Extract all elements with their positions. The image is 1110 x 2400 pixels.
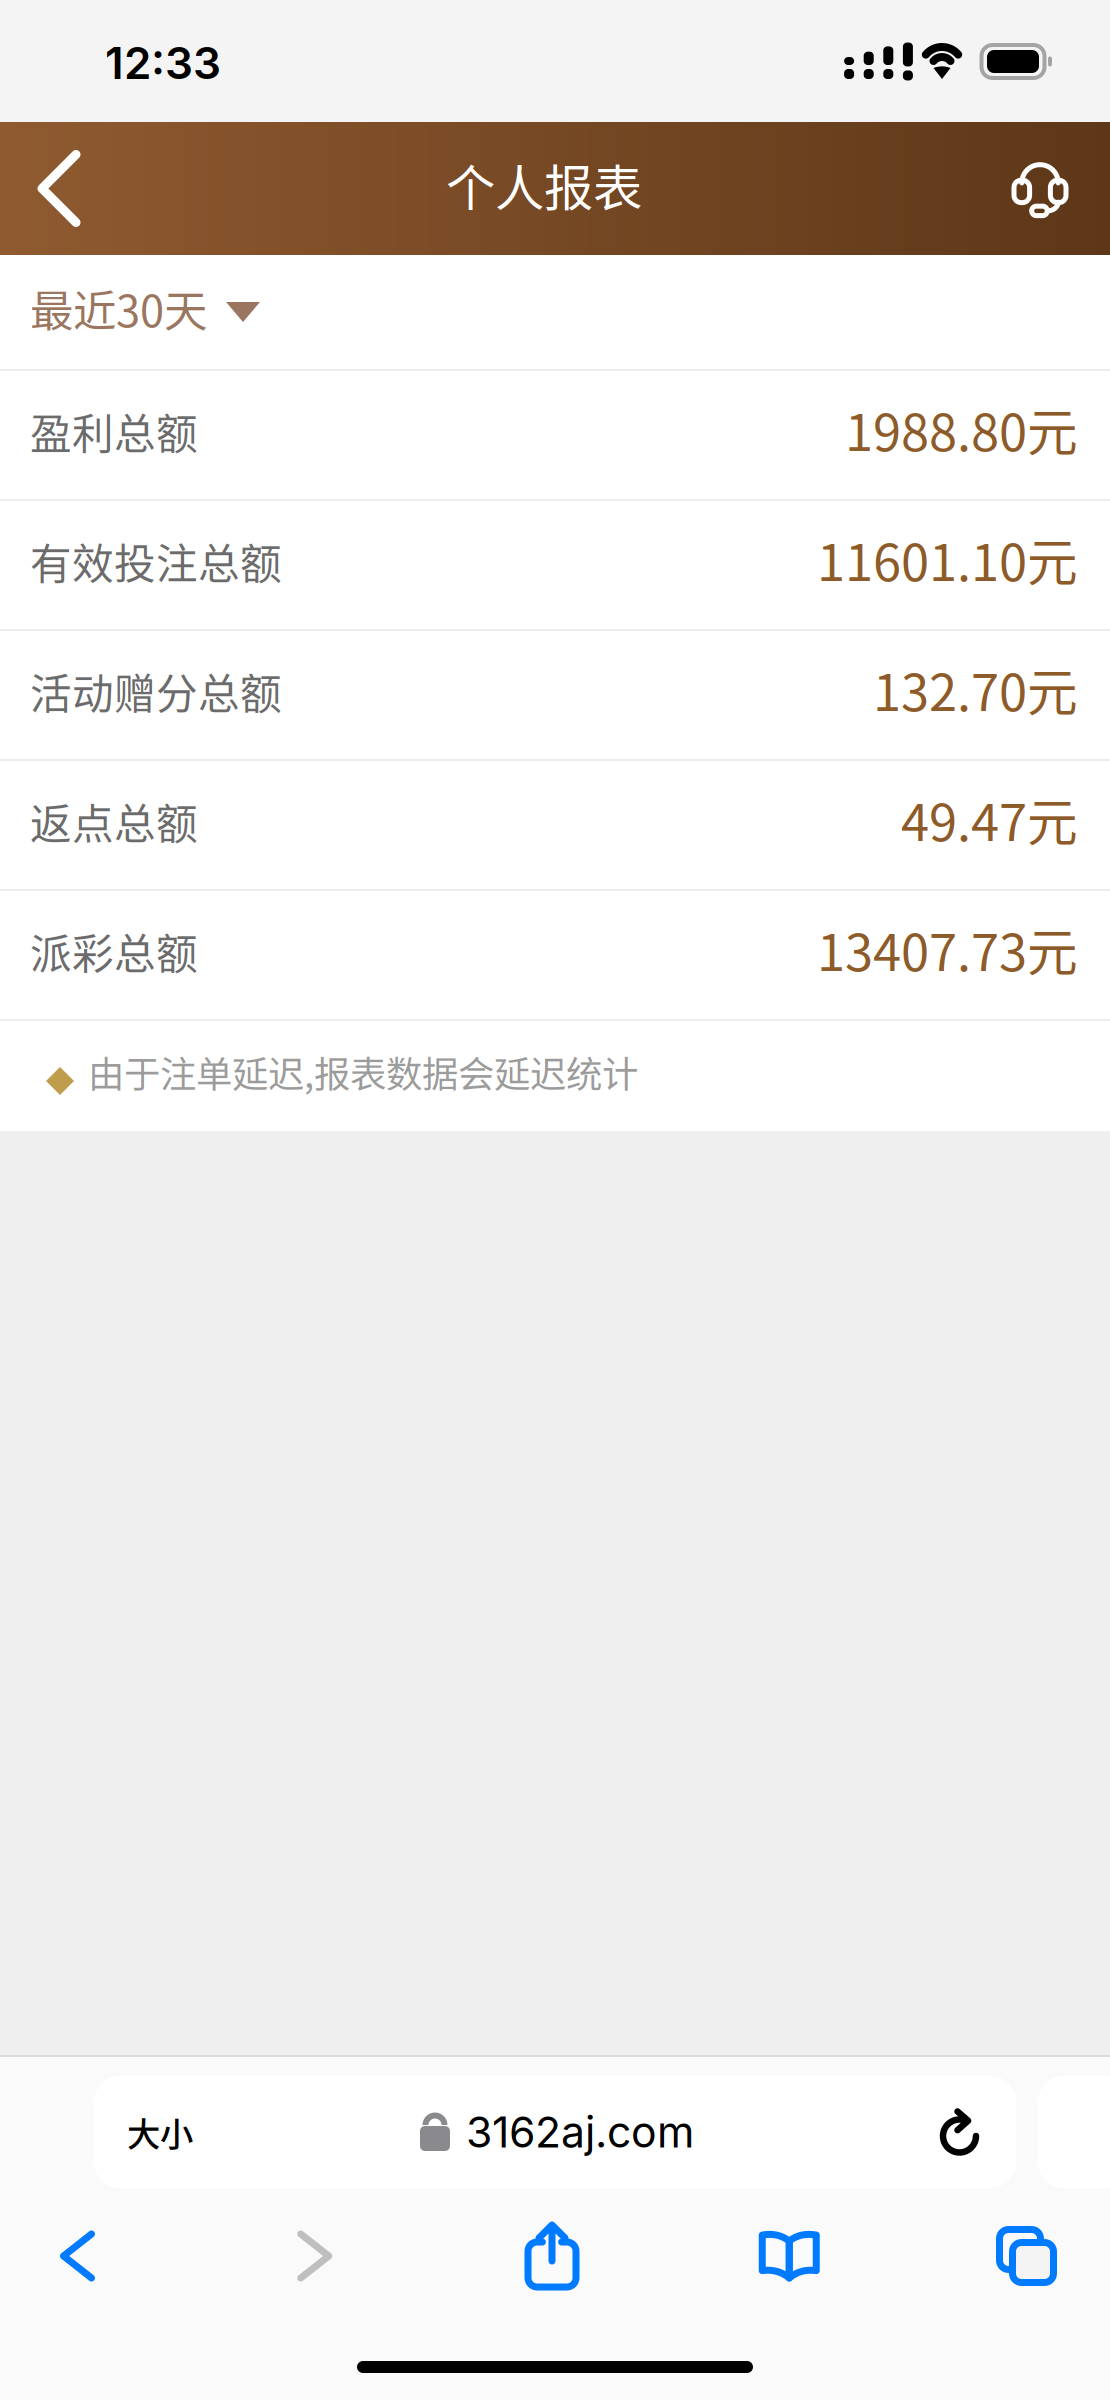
button[interactable]: Customer service	[986, 122, 1110, 254]
staticText: 13407.73元	[817, 912, 1078, 986]
button[interactable]: Tabs	[949, 2200, 1104, 2312]
staticText: 返点总额	[30, 791, 198, 851]
staticText: 最近30天	[30, 276, 207, 339]
button[interactable]: Bookmarks	[712, 2200, 867, 2312]
staticText: 活动赠分总额	[30, 661, 282, 721]
staticText: 11601.10元	[817, 522, 1078, 596]
button[interactable]: Forward	[237, 2200, 392, 2312]
staticText: 12:33	[105, 36, 221, 90]
button[interactable]: Share	[474, 2200, 629, 2312]
button[interactable]: Back	[0, 2200, 155, 2312]
staticText: 个人报表	[446, 149, 642, 220]
staticText: 3162aj.com	[466, 2106, 694, 2158]
staticText: 大小	[127, 2108, 193, 2156]
staticText: 派彩总额	[30, 921, 198, 981]
button[interactable]: Back	[0, 122, 106, 254]
staticText: 1988.80元	[845, 392, 1078, 466]
staticText: 盈利总额	[30, 401, 198, 461]
staticText: 49.47元	[901, 782, 1078, 856]
button[interactable]: 最近30天	[0, 255, 1110, 369]
staticText: 132.70元	[873, 652, 1078, 726]
staticText: 有效投注总额	[30, 531, 282, 591]
button[interactable]: 3162aj.com	[94, 2076, 1016, 2188]
staticText: 由于注单延迟,报表数据会延迟统计	[88, 1046, 638, 1098]
